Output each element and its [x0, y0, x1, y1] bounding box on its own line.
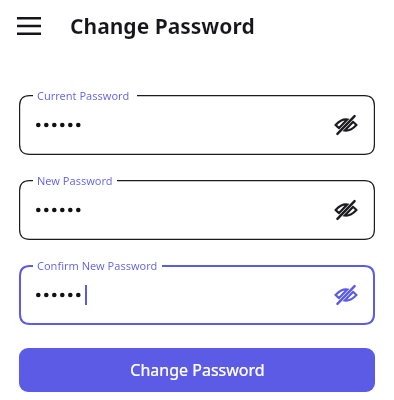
staticText: New Password	[37, 173, 113, 188]
staticText: Current Password	[37, 88, 130, 103]
button[interactable]: Toggle password visibility for Current P…	[329, 108, 363, 142]
staticText: Confirm New Password	[37, 258, 158, 273]
button[interactable]: Change Password	[19, 348, 375, 392]
staticText: Change Password	[130, 359, 265, 381]
button[interactable]: Open navigation menu	[9, 6, 49, 46]
staticText: Change Password	[70, 12, 255, 41]
button[interactable]: Toggle password visibility for Confirm N…	[329, 278, 363, 312]
button[interactable]: Toggle password visibility for New Passw…	[329, 193, 363, 227]
